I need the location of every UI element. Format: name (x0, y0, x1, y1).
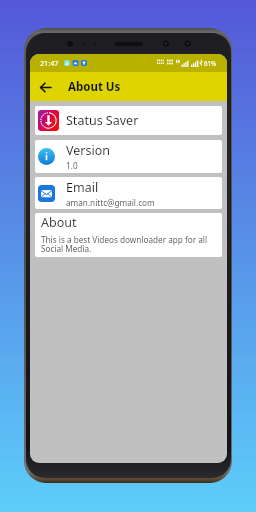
staticText: About (41, 214, 77, 231)
staticText: 1.0 (66, 160, 78, 171)
button[interactable]: Status Saver (35, 106, 222, 135)
staticText: Version (66, 142, 110, 159)
button[interactable]: About (35, 213, 222, 257)
staticText: 61% (204, 59, 217, 67)
staticText: Email (66, 179, 99, 196)
staticText: This is a best Videos downloader app for… (41, 234, 216, 255)
button[interactable]: Back (35, 77, 55, 97)
button[interactable]: Email (35, 177, 222, 209)
button[interactable]: Version (35, 140, 222, 173)
staticText: aman.nittc@gmail.com (66, 197, 155, 208)
staticText: Status Saver (66, 112, 139, 129)
staticText: About Us (68, 79, 121, 95)
staticText: 21:47 (40, 58, 59, 68)
